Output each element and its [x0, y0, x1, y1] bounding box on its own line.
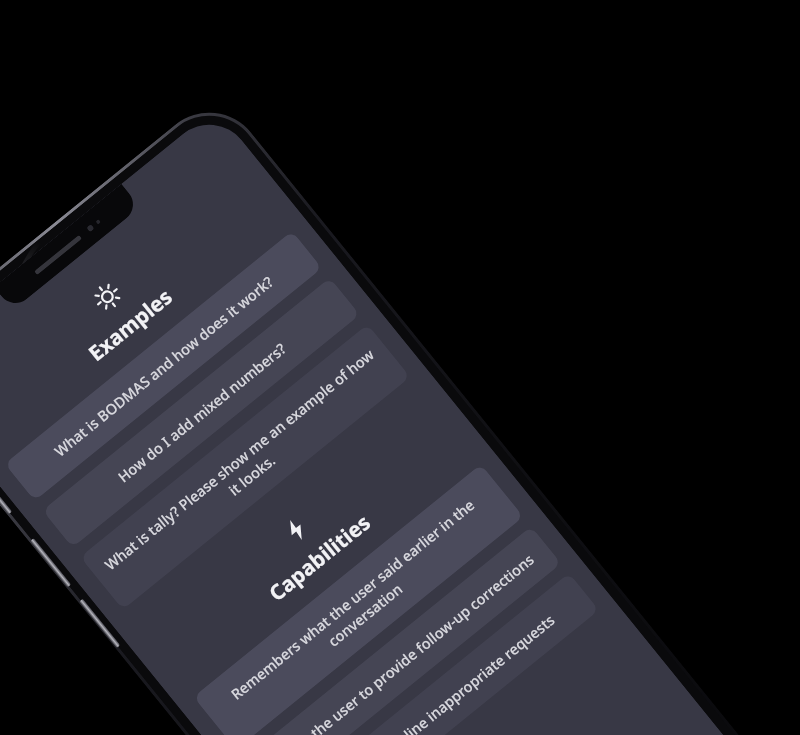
button[interactable]: What is tally? Please show me an example… — [80, 324, 410, 610]
staticText: Allows the user to provide follow-up cor… — [268, 549, 538, 735]
staticText: What is BODMAS and how does it work? — [50, 271, 277, 460]
button[interactable]: Allows the user to provide follow-up cor… — [244, 526, 561, 735]
staticText: Remembers what the user said earlier in … — [213, 484, 504, 730]
other: Capabilities — [278, 512, 314, 548]
staticText: How do I add mixed numbers? — [113, 338, 290, 486]
other: Examples — [89, 278, 126, 315]
staticText: Capabilities — [263, 508, 376, 608]
staticText: Examples — [82, 282, 178, 368]
staticText: Trained to decline inappropriate request… — [323, 609, 558, 735]
button[interactable]: Trained to decline inappropriate request… — [281, 573, 599, 735]
staticText: What is tally? Please show me an example… — [100, 344, 391, 590]
button[interactable]: How do I add mixed numbers? — [42, 277, 360, 548]
button[interactable]: Remembers what the user said earlier in … — [193, 464, 524, 735]
button[interactable]: What is BODMAS and how does it work? — [4, 231, 322, 501]
